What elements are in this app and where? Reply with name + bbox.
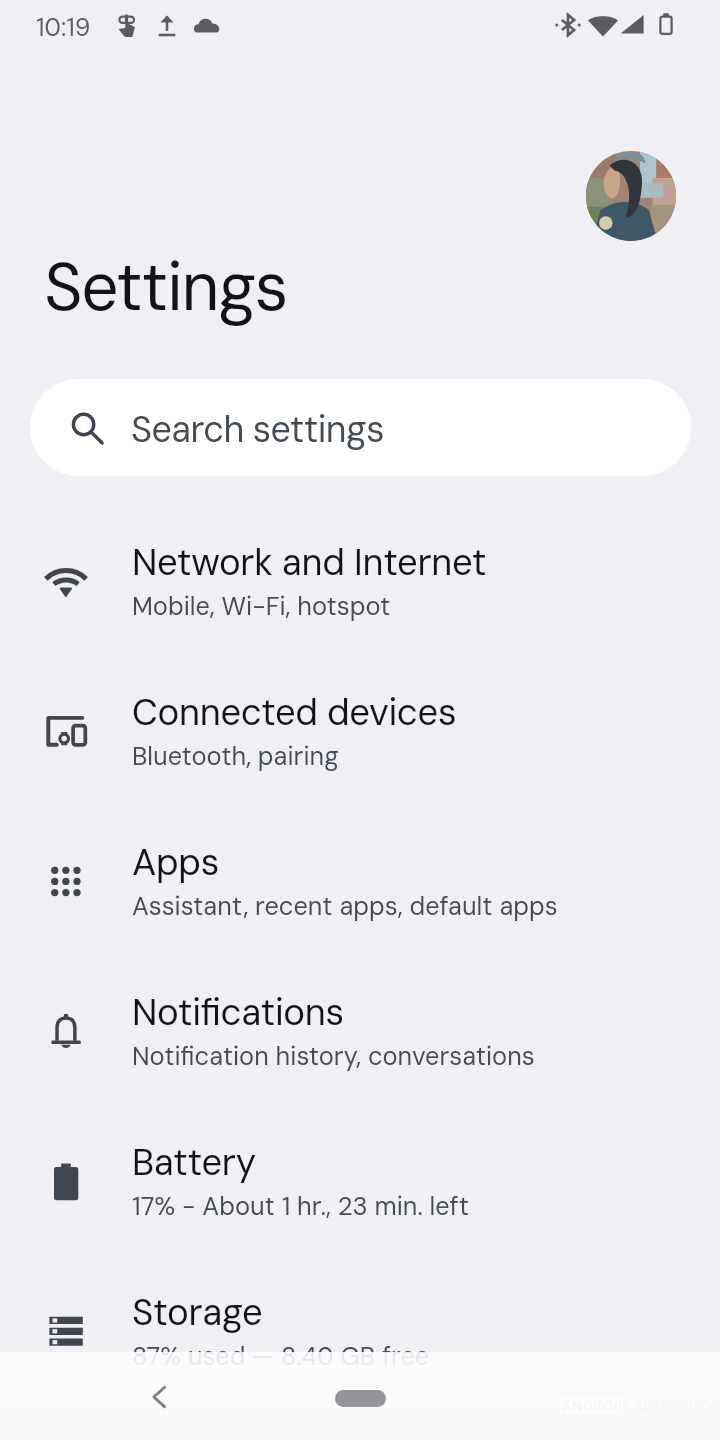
- button[interactable]: Back: [146, 1384, 172, 1410]
- button[interactable]: Notifications: [0, 956, 720, 1106]
- staticText: Battery: [132, 1139, 256, 1187]
- button[interactable]: Account: [586, 151, 676, 241]
- button[interactable]: Storage: [0, 1256, 720, 1406]
- staticText: Connected devices: [132, 689, 457, 737]
- button[interactable]: Battery: [0, 1106, 720, 1256]
- staticText: 17% - About 1 hr., 23 min. left: [132, 1190, 469, 1223]
- staticText: 87% used — 8.40 GB free: [132, 1340, 430, 1373]
- staticText: Notifications: [132, 989, 344, 1037]
- staticText: Notification history, conversations: [132, 1040, 535, 1073]
- button[interactable]: Search settings: [30, 379, 691, 476]
- staticText: Apps: [132, 839, 219, 887]
- staticText: 10:19: [36, 11, 91, 44]
- button[interactable]: Connected devices: [0, 656, 720, 806]
- staticText: Mobile, Wi-Fi, hotspot: [132, 590, 391, 623]
- staticText: Search settings: [131, 406, 384, 453]
- button[interactable]: Network and Internet: [0, 506, 720, 656]
- staticText: Settings: [44, 245, 287, 331]
- button[interactable]: Apps: [0, 806, 720, 956]
- staticText: Assistant, recent apps, default apps: [132, 890, 558, 923]
- button[interactable]: Home: [335, 1390, 386, 1407]
- staticText: Network and Internet: [132, 539, 487, 587]
- staticText: Storage: [132, 1289, 263, 1337]
- staticText: Bluetooth, pairing: [132, 740, 339, 773]
